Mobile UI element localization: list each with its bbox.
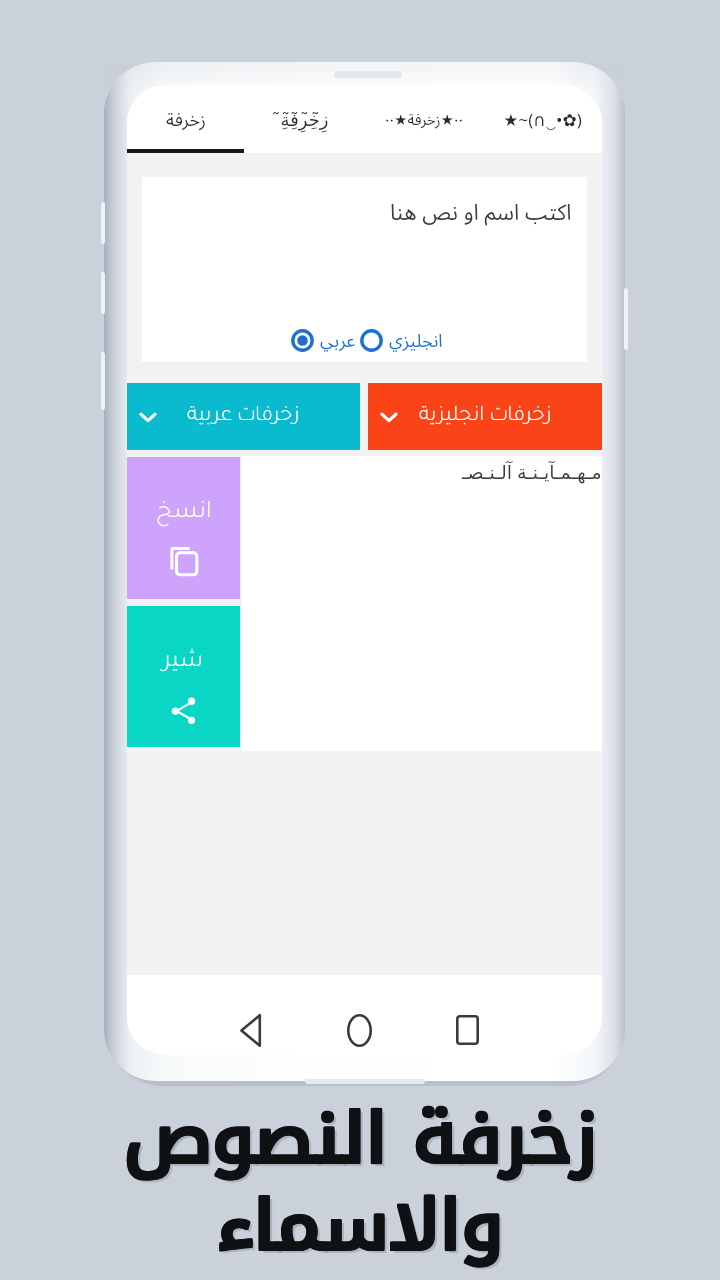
button[interactable]: Back bbox=[228, 1008, 272, 1052]
staticText: زخرفة النصوص bbox=[123, 1075, 598, 1206]
staticText: والاسماء bbox=[217, 1160, 505, 1280]
staticText: والاسماء bbox=[216, 1161, 504, 1280]
staticText: زخرفات انجليزية bbox=[419, 406, 552, 428]
staticText: زخرفة النصوص bbox=[127, 1077, 601, 1208]
staticText: زخرفة النصوص bbox=[122, 1074, 596, 1205]
staticText: مـهـمـآيـنـة آلـنـصـ bbox=[462, 459, 602, 485]
staticText: ٠٠★زخرفة★٠٠ bbox=[385, 109, 463, 129]
button[interactable]: اكتب اسم او نص هنا bbox=[142, 177, 587, 362]
staticText: زخرفة النصوص bbox=[122, 1073, 596, 1204]
staticText: والاسماء bbox=[216, 1160, 504, 1280]
button[interactable]: زخرفات انجليزية bbox=[368, 383, 602, 450]
button[interactable]: زِ̃خِ̃رِ̃فِ̃ةِ̃ bbox=[245, 85, 364, 153]
button[interactable]: مـهـمـآيـنـة آلـنـصـ bbox=[242, 456, 602, 751]
staticText: زخرفة النصوص bbox=[122, 1075, 596, 1206]
staticText: والاسماء bbox=[216, 1162, 504, 1280]
staticText: زِ̃خِ̃رِ̃فِ̃ةِ̃ bbox=[280, 109, 329, 130]
staticText: زخرفة النصوص bbox=[125, 1075, 599, 1206]
staticText: والاسماء bbox=[217, 1162, 505, 1280]
button[interactable]: Home bbox=[337, 1008, 381, 1052]
button[interactable]: زخرفات عربية bbox=[127, 383, 360, 450]
staticText: والاسماء bbox=[215, 1161, 503, 1280]
button[interactable]: ★~(∩‿•✿) bbox=[483, 85, 602, 153]
staticText: والاسماء bbox=[219, 1164, 507, 1280]
staticText: زخرفة bbox=[166, 107, 206, 132]
staticText: والاسماء bbox=[215, 1162, 503, 1280]
staticText: والاسماء bbox=[217, 1161, 505, 1280]
button[interactable]: ٠٠★زخرفة★٠٠ bbox=[364, 85, 483, 153]
staticText: زخرفة النصوص bbox=[125, 1073, 599, 1204]
staticText: عربي bbox=[320, 328, 356, 353]
staticText: انجليزي bbox=[389, 328, 443, 353]
button[interactable]: انجليزي bbox=[360, 328, 443, 353]
staticText: زخرفة النصوص bbox=[125, 1074, 599, 1205]
button[interactable]: Recents bbox=[445, 1008, 489, 1052]
staticText: زخرفات عربية bbox=[187, 406, 300, 428]
button[interactable]: انسخ bbox=[127, 457, 240, 599]
staticText: زخرفة النصوص bbox=[123, 1073, 598, 1204]
staticText: شير bbox=[163, 650, 204, 675]
button[interactable]: زخرفة bbox=[127, 85, 245, 153]
staticText: زخرفة النصوص bbox=[123, 1074, 598, 1205]
staticText: اكتب اسم او نص هنا bbox=[390, 196, 572, 226]
staticText: والاسماء bbox=[215, 1160, 503, 1280]
staticText: ★~(∩‿•✿) bbox=[503, 108, 582, 131]
button[interactable]: عربي bbox=[291, 328, 356, 353]
staticText: انسخ bbox=[156, 501, 212, 526]
button[interactable]: شير bbox=[127, 606, 240, 747]
